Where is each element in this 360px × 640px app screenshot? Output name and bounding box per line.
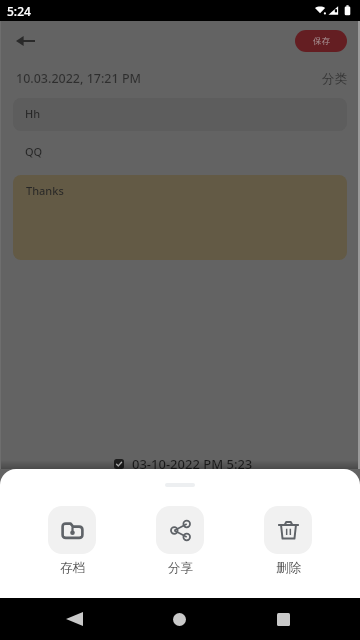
staticText: Thanks (26, 183, 64, 198)
staticText: Hh (25, 106, 41, 121)
button[interactable]: Delete (264, 506, 312, 576)
staticText: 删除 (276, 560, 301, 576)
button[interactable]: Share (156, 506, 204, 576)
button[interactable]: Back (58, 598, 90, 640)
staticText: 5:24 (7, 3, 31, 19)
button[interactable]: Back (10, 26, 40, 56)
button[interactable]: Archive (48, 506, 96, 576)
staticText: 10.03.2022, 17:21 PM (16, 70, 142, 87)
button[interactable]: Home (163, 598, 195, 640)
button[interactable]: 分类 (322, 71, 347, 87)
staticText: 保存 (313, 36, 330, 47)
staticText: QQ (25, 144, 43, 159)
staticText: 分享 (168, 560, 193, 576)
staticText: 03-10-2022 PM 5:23 (132, 455, 253, 473)
button[interactable]: Recent apps (267, 598, 299, 640)
button[interactable]: QQ (13, 135, 347, 168)
button[interactable]: 保存 (295, 30, 347, 52)
staticText: 存档 (60, 560, 85, 576)
